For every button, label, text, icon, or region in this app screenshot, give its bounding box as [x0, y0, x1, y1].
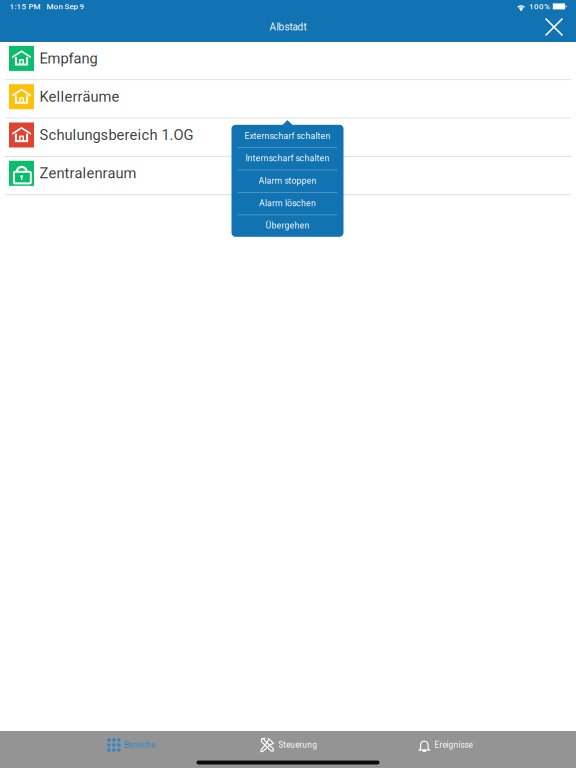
staticText: Empfang	[39, 50, 97, 67]
staticText: Alarm stoppen	[258, 176, 316, 186]
button[interactable]: Close	[544, 17, 576, 37]
button[interactable]: Schulungsbereich 1.OG	[0, 119, 576, 157]
staticText: 100%	[529, 2, 550, 11]
button[interactable]: Alarm stoppen	[231, 170, 343, 192]
button[interactable]: Zentralenraum	[0, 157, 576, 195]
staticText: Schulungsbereich 1.OG	[39, 126, 193, 144]
button[interactable]: Bereiche	[52, 734, 209, 755]
button[interactable]: Übergehen	[231, 214, 343, 237]
staticText: Albstadt	[269, 21, 306, 33]
staticText: Zentralenraum	[39, 165, 136, 182]
staticText: Internscharf schalten	[245, 153, 329, 163]
button[interactable]: Empfang	[0, 42, 576, 80]
staticText: Übergehen	[265, 220, 309, 231]
staticText: Ereignisse	[434, 740, 472, 750]
staticText: Mon Sep 9	[46, 2, 84, 11]
staticText: Alarm löschen	[259, 198, 316, 208]
button[interactable]: Externscharf schalten	[231, 125, 343, 147]
staticText: 1:15 PM	[9, 2, 40, 11]
staticText: Steuerung	[278, 740, 317, 750]
button[interactable]: Ereignisse	[366, 734, 523, 755]
staticText: Kellerräume	[39, 88, 119, 105]
button[interactable]: Alarm löschen	[231, 192, 343, 214]
staticText: Bereiche	[124, 740, 155, 750]
staticText: Externscharf schalten	[244, 131, 330, 141]
button[interactable]: Kellerräume	[0, 80, 576, 119]
button[interactable]: Internscharf schalten	[231, 147, 343, 170]
button[interactable]: Steuerung	[209, 734, 366, 755]
